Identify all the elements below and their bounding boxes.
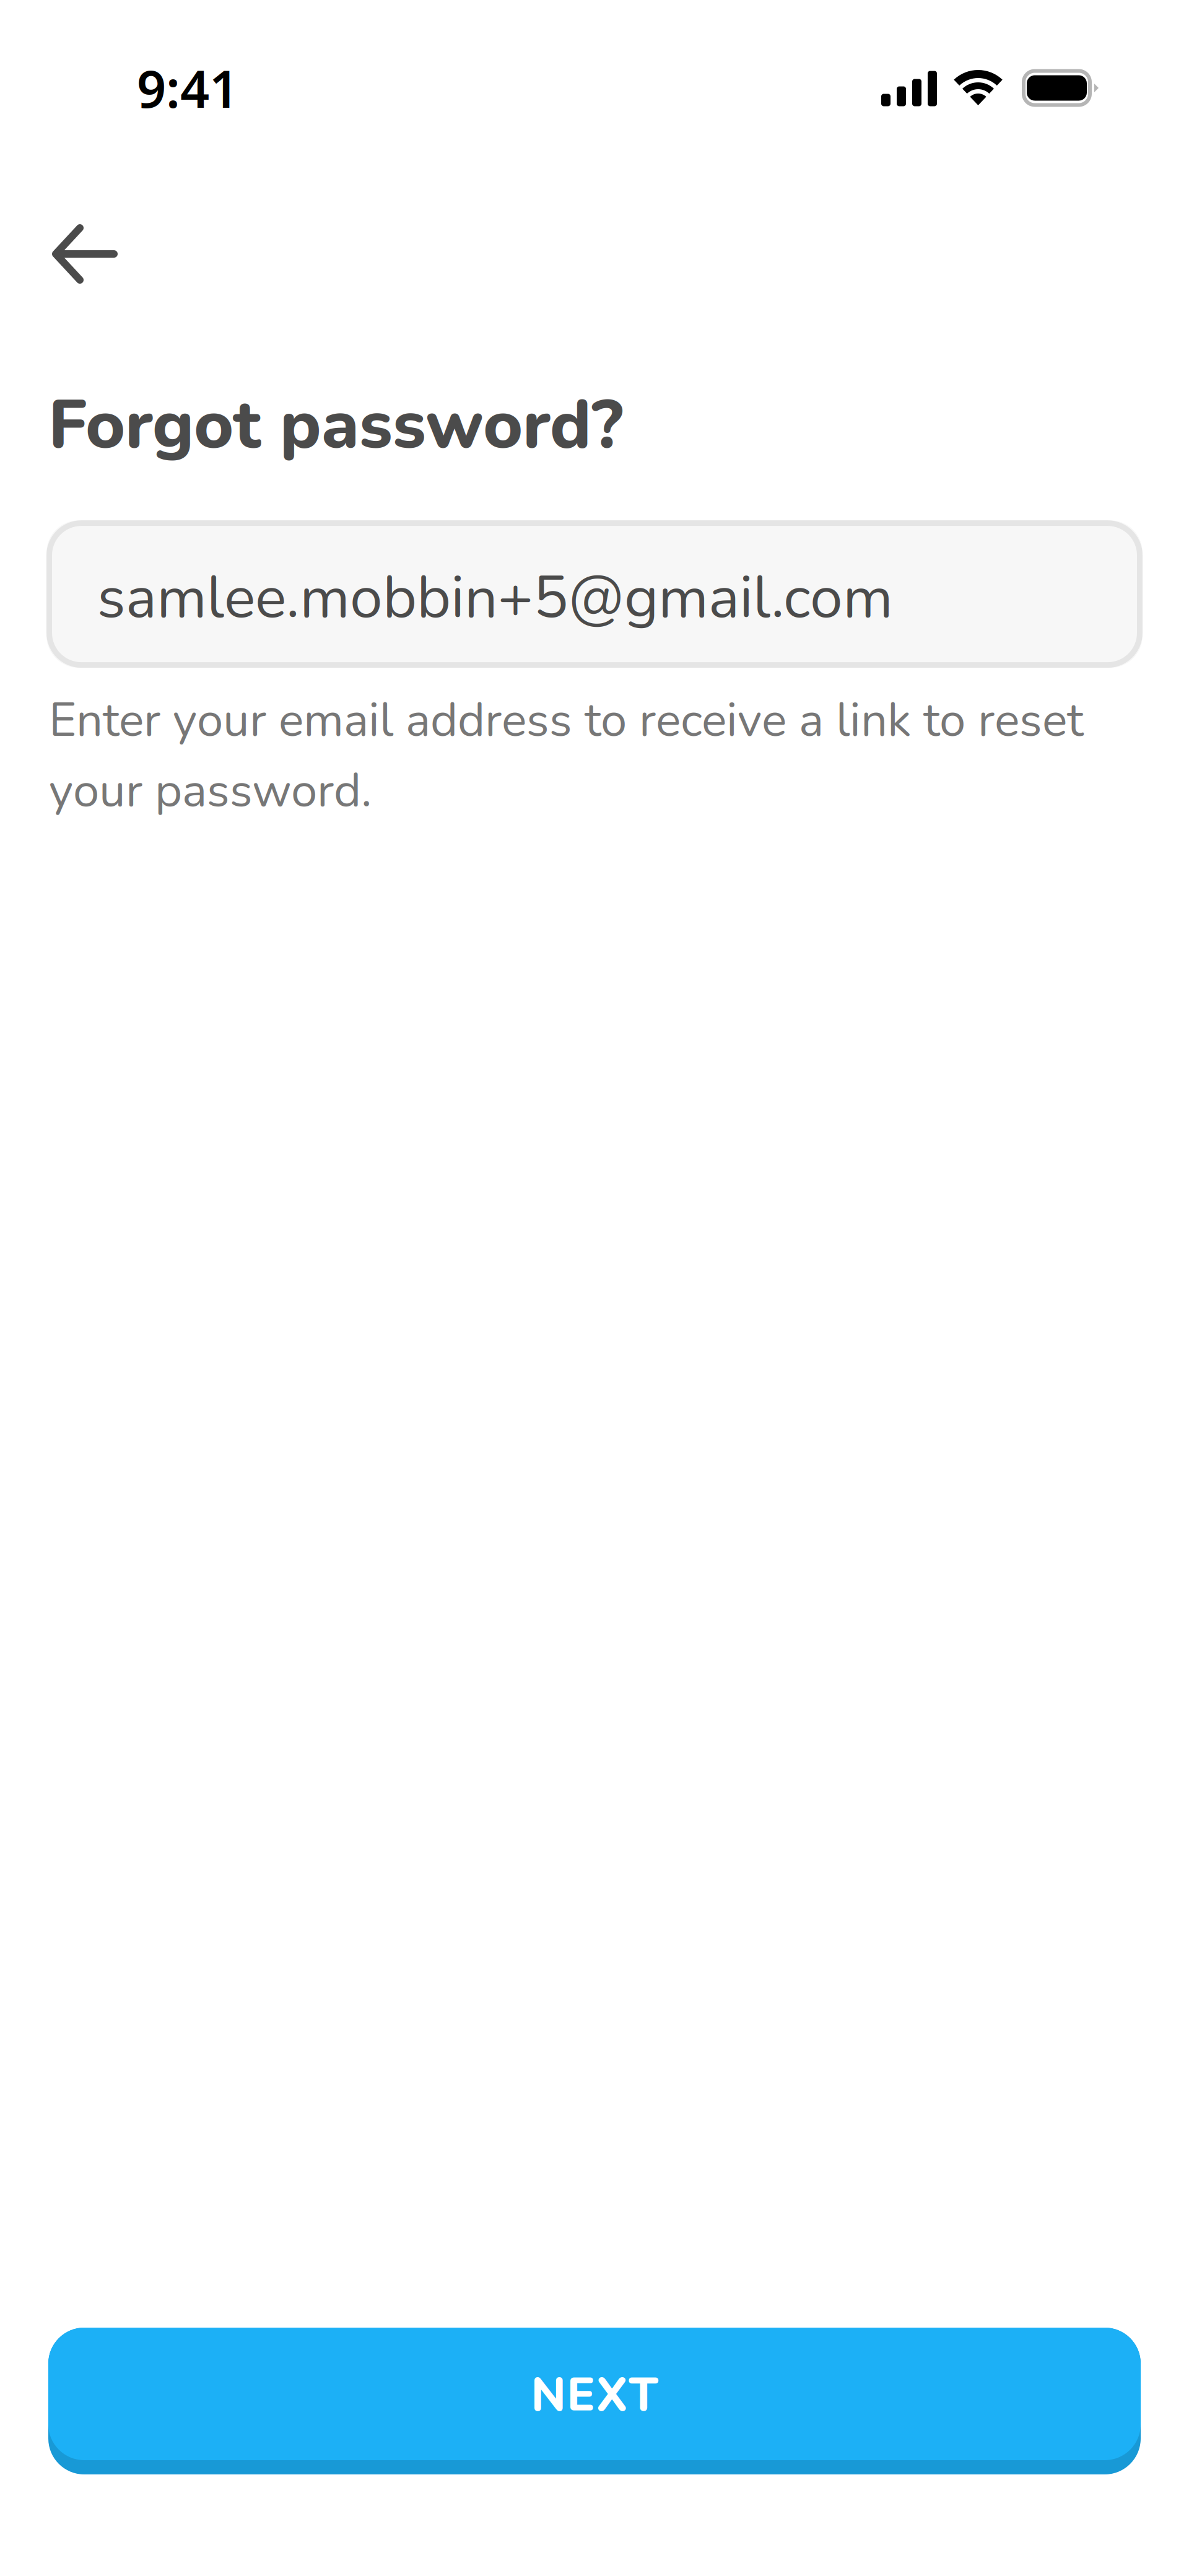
staticText: NEXT <box>531 2364 658 2427</box>
staticText: Enter your email address to receive a li… <box>49 688 1084 823</box>
button[interactable]: Back <box>0 199 145 308</box>
staticText: samlee.mobbin+5@gmail.com <box>97 558 893 638</box>
button[interactable]: NEXT <box>48 2328 1141 2474</box>
staticText: 9:41 <box>137 54 238 122</box>
staticText: Forgot password? <box>48 379 623 471</box>
